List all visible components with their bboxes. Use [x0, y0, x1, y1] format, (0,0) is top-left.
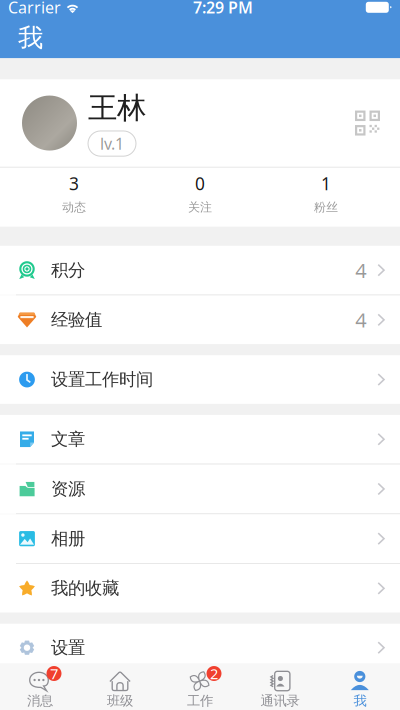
staticText: 4 [355, 257, 366, 283]
staticText: 班级 [107, 692, 133, 709]
staticText: lv.1 [100, 133, 124, 154]
button[interactable]: 7 [0, 664, 80, 710]
button[interactable]: 王林 [0, 79, 400, 167]
button[interactable]: 我的收藏 [0, 564, 400, 613]
staticText: 动态 [62, 200, 86, 215]
staticText: 相册 [51, 528, 85, 549]
staticText: Carrier [8, 0, 61, 18]
staticText: 7:29 PM [193, 0, 253, 18]
staticText: 7 [50, 664, 58, 683]
staticText: 通讯录 [260, 692, 299, 709]
button[interactable]: 文章 [0, 415, 400, 464]
staticText: 我 [18, 22, 43, 53]
button[interactable]: 我 [320, 664, 400, 710]
staticText: 积分 [51, 259, 85, 281]
button[interactable]: 积分 [0, 246, 400, 294]
staticText: 王林 [88, 90, 146, 126]
button[interactable]: 2 [160, 664, 240, 710]
button[interactable]: 1 [263, 168, 389, 227]
staticText: 我 [353, 692, 366, 709]
staticText: 关注 [188, 200, 212, 215]
button[interactable]: 通讯录 [240, 664, 320, 710]
staticText: 设置工作时间 [51, 369, 153, 390]
staticText: 工作 [187, 692, 213, 709]
staticText: 文章 [51, 429, 85, 450]
staticText: 粉丝 [314, 200, 338, 215]
staticText: 设置 [51, 637, 85, 658]
staticText: 3 [69, 172, 79, 195]
staticText: 经验值 [51, 309, 102, 330]
staticText: 1 [321, 172, 331, 195]
button[interactable]: 0 [137, 168, 263, 227]
button[interactable]: 3 [11, 168, 137, 227]
staticText: 0 [195, 172, 205, 195]
button[interactable]: 设置工作时间 [0, 355, 400, 404]
staticText: 消息 [27, 692, 53, 709]
staticText: 资源 [51, 478, 85, 500]
button[interactable]: 班级 [80, 664, 160, 710]
button[interactable]: 相册 [0, 514, 400, 563]
button[interactable]: 经验值 [0, 295, 400, 344]
staticText: 2 [210, 664, 218, 683]
staticText: 4 [355, 307, 366, 333]
button[interactable]: 资源 [0, 465, 400, 513]
button[interactable]: 设置 [0, 624, 400, 664]
staticText: 我的收藏 [51, 578, 119, 599]
